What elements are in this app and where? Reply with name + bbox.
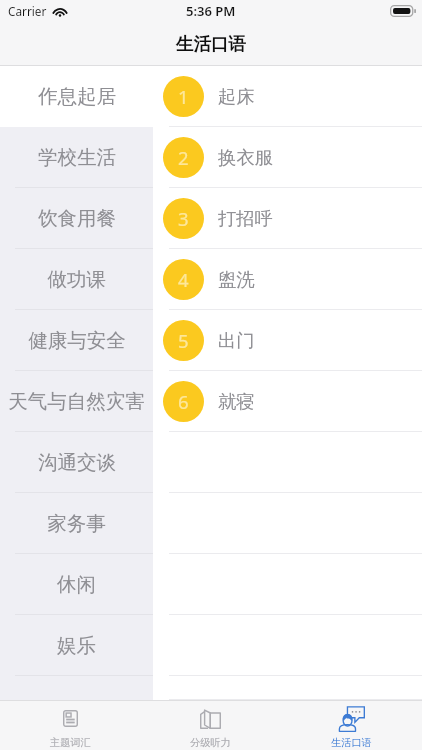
staticText: 作息起居 — [38, 84, 116, 109]
staticText: 就寝 — [218, 390, 255, 413]
button[interactable]: 2 — [153, 127, 422, 188]
staticText: 分级听力 — [190, 736, 231, 749]
button[interactable]: 1 — [153, 66, 422, 127]
staticText: 1 — [178, 84, 189, 109]
staticText: 生活口语 — [331, 736, 372, 749]
staticText: 起床 — [218, 85, 255, 108]
button[interactable]: 作息起居 — [0, 66, 153, 127]
staticText: 2 — [178, 145, 189, 170]
button[interactable]: 饮食用餐 — [0, 188, 153, 249]
staticText: 出门 — [218, 329, 255, 352]
button[interactable]: 6 — [153, 371, 422, 432]
button[interactable]: 健康与安全 — [0, 310, 153, 371]
button[interactable]: 5 — [153, 310, 422, 371]
button[interactable]: 做功课 — [0, 249, 153, 310]
button[interactable]: 休闲 — [0, 554, 153, 615]
staticText: 学校生活 — [38, 145, 116, 170]
staticText: 盥洗 — [218, 268, 255, 291]
button[interactable]: 家务事 — [0, 493, 153, 554]
staticText: 换衣服 — [218, 146, 273, 169]
staticText: 5:36 PM — [186, 2, 236, 20]
staticText: 沟通交谈 — [38, 450, 116, 475]
staticText: 3 — [178, 206, 189, 231]
button[interactable]: 学校生活 — [0, 127, 153, 188]
staticText: 健康与安全 — [28, 328, 126, 353]
staticText: 娱乐 — [57, 633, 96, 658]
staticText: 6 — [178, 389, 189, 414]
button[interactable]: 主题词汇 — [0, 700, 140, 750]
staticText: 生活口语 — [176, 33, 246, 55]
button[interactable]: 沟通交谈 — [0, 432, 153, 493]
button[interactable]: 4 — [153, 249, 422, 310]
staticText: 饮食用餐 — [38, 206, 116, 231]
staticText: 打招呼 — [218, 207, 273, 230]
button[interactable]: 3 — [153, 188, 422, 249]
staticText: 天气与自然灾害 — [8, 389, 145, 414]
button[interactable]: 生活口语 — [281, 700, 422, 750]
staticText: 做功课 — [47, 267, 106, 292]
staticText: Carrier — [8, 3, 47, 19]
staticText: 5 — [178, 328, 189, 353]
button[interactable]: 娱乐 — [0, 615, 153, 676]
staticText: 4 — [178, 267, 189, 292]
button[interactable]: 天气与自然灾害 — [0, 371, 153, 432]
staticText: 主题词汇 — [50, 736, 91, 749]
staticText: 休闲 — [57, 572, 96, 597]
staticText: 家务事 — [47, 511, 106, 536]
button[interactable]: 分级听力 — [140, 700, 281, 750]
